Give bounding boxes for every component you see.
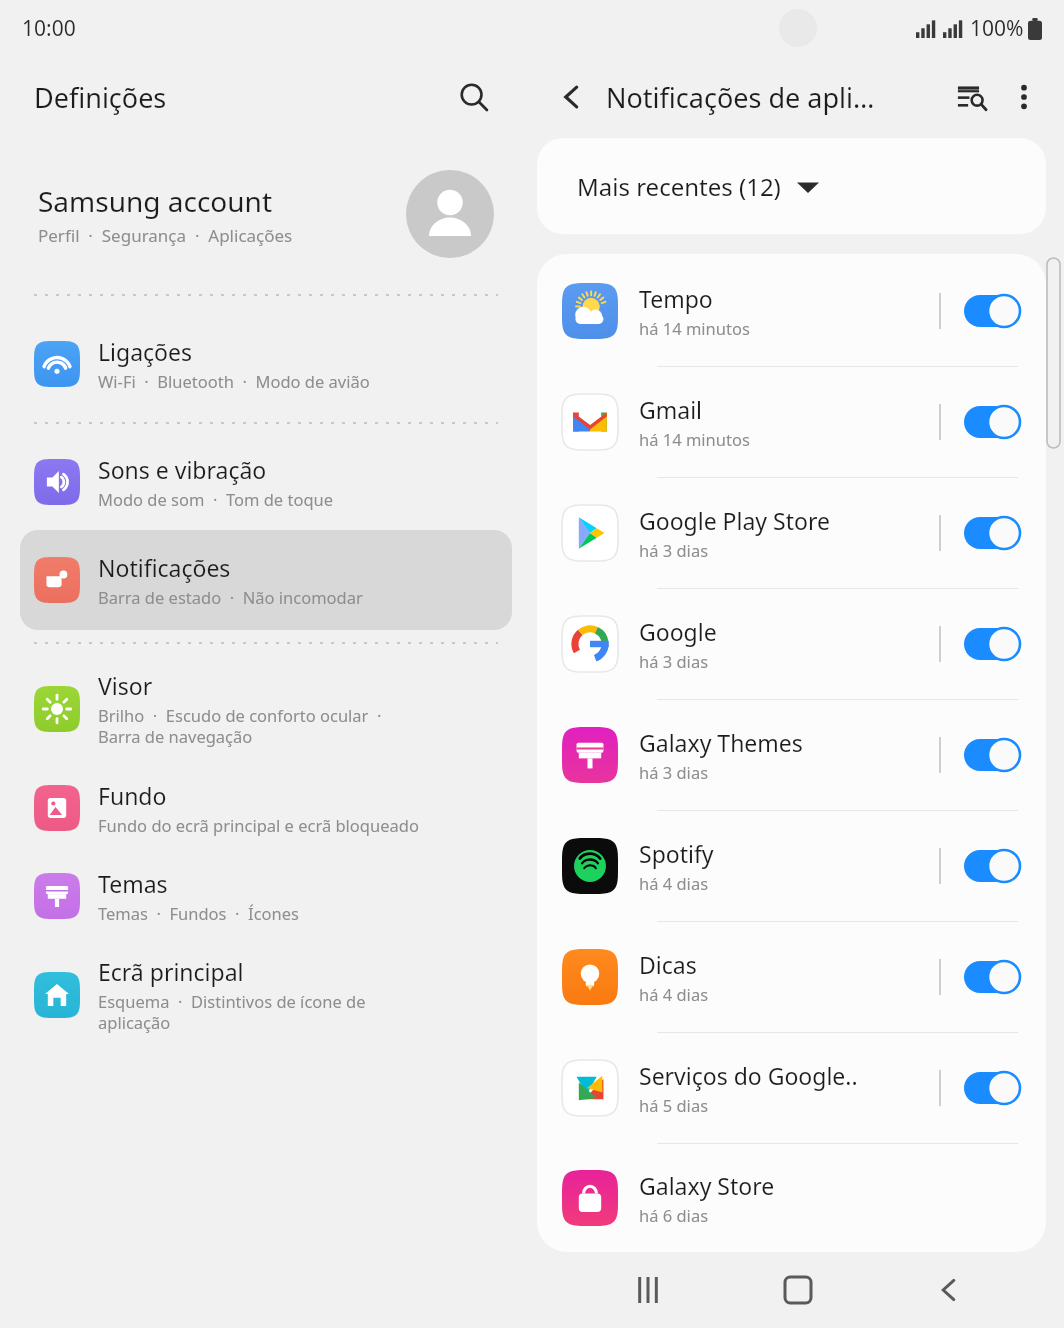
staticText: Tempo [639,283,713,314]
staticText: Temas · Fundos · Ícones [98,902,299,924]
button[interactable]: Dicas [537,922,1046,1032]
button[interactable]: Toggle Google Play Store notifications [958,511,1026,555]
staticText: Samsung account [38,182,273,220]
button[interactable]: Spotify [537,811,1046,921]
staticText: Mais recentes (12) [577,170,781,203]
staticText: há 4 dias [639,983,709,1005]
button[interactable]: Gmail [537,367,1046,477]
button[interactable]: Visor [20,654,512,764]
staticText: Spotify [639,838,714,869]
staticText: Ecrã principal [98,956,244,987]
staticText: 10:00 [22,14,76,43]
button[interactable]: Toggle Gmail notifications [958,400,1026,444]
staticText: Serviços do Google.. [639,1060,858,1091]
button[interactable]: Toggle Dicas notifications [958,955,1026,999]
button[interactable]: Samsung account [0,162,532,266]
button[interactable]: Ecrã principal [20,940,512,1050]
button[interactable]: Home [763,1255,833,1325]
staticText: Temas [98,868,168,899]
staticText: Gmail [639,394,703,425]
staticText: há 3 dias [639,761,709,783]
button[interactable]: Toggle Galaxy Themes notifications [958,733,1026,777]
button[interactable]: Recents [613,1255,683,1325]
button[interactable]: Galaxy Store [537,1144,1046,1252]
staticText: Perfil · Segurança · Aplicações [38,224,293,247]
button[interactable]: Search [450,73,498,121]
staticText: Barra de estado · Não incomodar [98,586,363,608]
button[interactable]: Temas [20,852,512,940]
button[interactable]: Toggle Serviços do Google.. notification… [958,1066,1026,1110]
button[interactable]: More options [998,71,1050,123]
button[interactable]: Notificações [20,530,512,630]
button[interactable]: Tempo [537,256,1046,366]
button[interactable]: Sort and search [946,71,998,123]
staticText: Google Play Store [639,505,830,536]
button[interactable]: Toggle Google notifications [958,622,1026,666]
button[interactable]: Galaxy Themes [537,700,1046,810]
button[interactable]: Toggle Tempo notifications [958,289,1026,333]
staticText: há 4 dias [639,872,709,894]
button[interactable]: Google [537,589,1046,699]
button[interactable]: Toggle Spotify notifications [958,844,1026,888]
staticText: Dicas [639,949,697,980]
staticText: Google [639,616,717,647]
staticText: Notificações de apli… [606,79,946,116]
staticText: Esquema · Distintivos de ícone de aplica… [98,990,366,1034]
staticText: Sons e vibração [98,454,267,485]
staticText: há 14 minutos [639,317,750,339]
staticText: Definições [34,79,450,116]
staticText: Fundo do ecrã principal e ecrã bloqueado [98,814,419,836]
staticText: Brilho · Escudo de conforto ocular · Bar… [98,704,382,748]
button[interactable]: Back [546,71,598,123]
button[interactable]: Back [914,1255,984,1325]
staticText: Modo de som · Tom de toque [98,488,334,510]
staticText: há 6 dias [639,1204,709,1226]
button[interactable]: Mais recentes (12) [537,138,1046,234]
staticText: Wi-Fi · Bluetooth · Modo de avião [98,370,370,392]
button[interactable]: Serviços do Google.. [537,1033,1046,1143]
staticText: há 5 dias [639,1094,709,1116]
button[interactable]: Google Play Store [537,478,1046,588]
button[interactable]: Ligações [20,320,512,408]
staticText: Ligações [98,336,192,367]
staticText: Notificações [98,552,231,583]
staticText: Galaxy Store [639,1170,775,1201]
staticText: Galaxy Themes [639,727,803,758]
staticText: há 3 dias [639,650,709,672]
staticText: 100% [970,14,1024,43]
staticText: Visor [98,670,153,701]
button[interactable]: Sons e vibração [20,438,512,526]
staticText: há 3 dias [639,539,709,561]
staticText: Fundo [98,780,167,811]
button[interactable]: Fundo [20,764,512,852]
staticText: há 14 minutos [639,428,750,450]
